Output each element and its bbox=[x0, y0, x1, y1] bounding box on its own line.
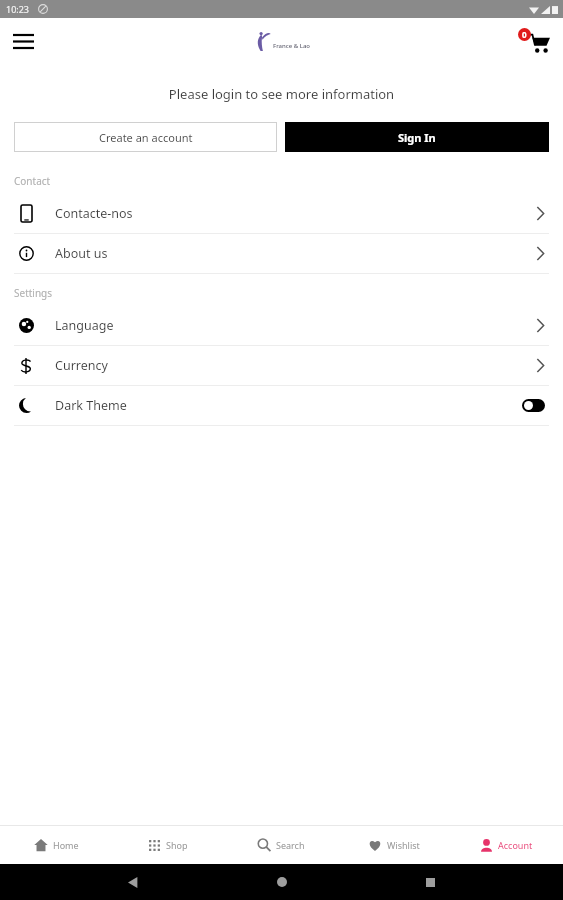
staticText: 10:23 bbox=[6, 3, 30, 15]
staticText: Wishlist bbox=[387, 839, 420, 851]
button[interactable]: Wishlist bbox=[337, 826, 450, 864]
button[interactable]: Home bbox=[0, 826, 112, 864]
staticText: Currency bbox=[55, 357, 536, 374]
button[interactable]: About us bbox=[0, 234, 563, 273]
staticText: Please login to see more information bbox=[0, 85, 563, 103]
staticText: Home bbox=[53, 839, 79, 851]
staticText: Contact bbox=[14, 174, 51, 188]
staticText: France & Lao bbox=[273, 42, 311, 50]
staticText: Settings bbox=[14, 286, 53, 300]
button[interactable]: Shop bbox=[112, 826, 224, 864]
button[interactable]: Account bbox=[450, 826, 563, 864]
staticText: Dark Theme bbox=[55, 397, 522, 414]
button[interactable]: Create an account bbox=[14, 122, 277, 152]
staticText: Search bbox=[276, 839, 305, 851]
button[interactable]: Recents bbox=[415, 867, 445, 897]
button[interactable]: Dark theme toggle bbox=[522, 399, 545, 412]
staticText: Shop bbox=[166, 839, 188, 851]
button[interactable]: Sign In bbox=[285, 122, 549, 152]
staticText: Contacte-nos bbox=[55, 205, 536, 222]
button[interactable]: Dark Theme bbox=[0, 386, 563, 425]
button[interactable]: Currency bbox=[0, 346, 563, 385]
staticText: Language bbox=[55, 317, 536, 334]
staticText: 0 bbox=[522, 29, 527, 40]
button[interactable]: Language bbox=[0, 306, 563, 345]
button[interactable]: Search bbox=[224, 826, 337, 864]
button[interactable]: Cart bbox=[517, 22, 555, 60]
staticText: Account bbox=[498, 839, 533, 851]
button[interactable]: Menu bbox=[6, 24, 40, 58]
button[interactable]: Back bbox=[118, 867, 148, 897]
staticText: About us bbox=[55, 245, 536, 262]
button[interactable]: Contacte-nos bbox=[0, 194, 563, 233]
staticText: Create an account bbox=[99, 130, 193, 145]
staticText: Sign In bbox=[398, 130, 436, 145]
button[interactable]: Home bbox=[267, 867, 297, 897]
